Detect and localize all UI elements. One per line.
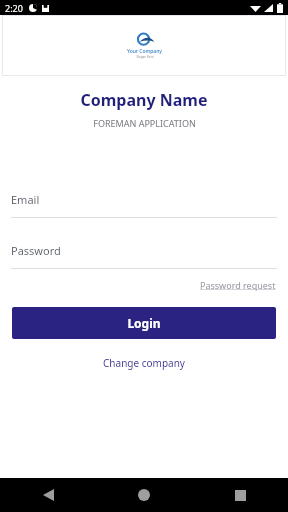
- button[interactable]: Password: [11, 243, 277, 269]
- staticText: FOREMAN APPLICATION: [93, 117, 196, 129]
- button[interactable]: Recent apps: [192, 478, 288, 512]
- staticText: Password: [11, 243, 61, 258]
- staticText: Slogan Here: [136, 55, 154, 59]
- staticText: Password request: [200, 279, 276, 291]
- staticText: Your Company: [127, 48, 162, 55]
- button[interactable]: Password request: [198, 277, 278, 293]
- button[interactable]: Home: [96, 478, 192, 512]
- staticText: Email: [11, 192, 40, 207]
- staticText: 2:20: [5, 2, 23, 14]
- button[interactable]: Login: [12, 307, 276, 339]
- button[interactable]: Email: [11, 192, 277, 218]
- staticText: Login: [127, 315, 161, 331]
- staticText: Company Name: [80, 89, 208, 111]
- staticText: Change company: [103, 356, 185, 370]
- button[interactable]: Back: [0, 478, 96, 512]
- button[interactable]: Change company: [97, 353, 191, 373]
